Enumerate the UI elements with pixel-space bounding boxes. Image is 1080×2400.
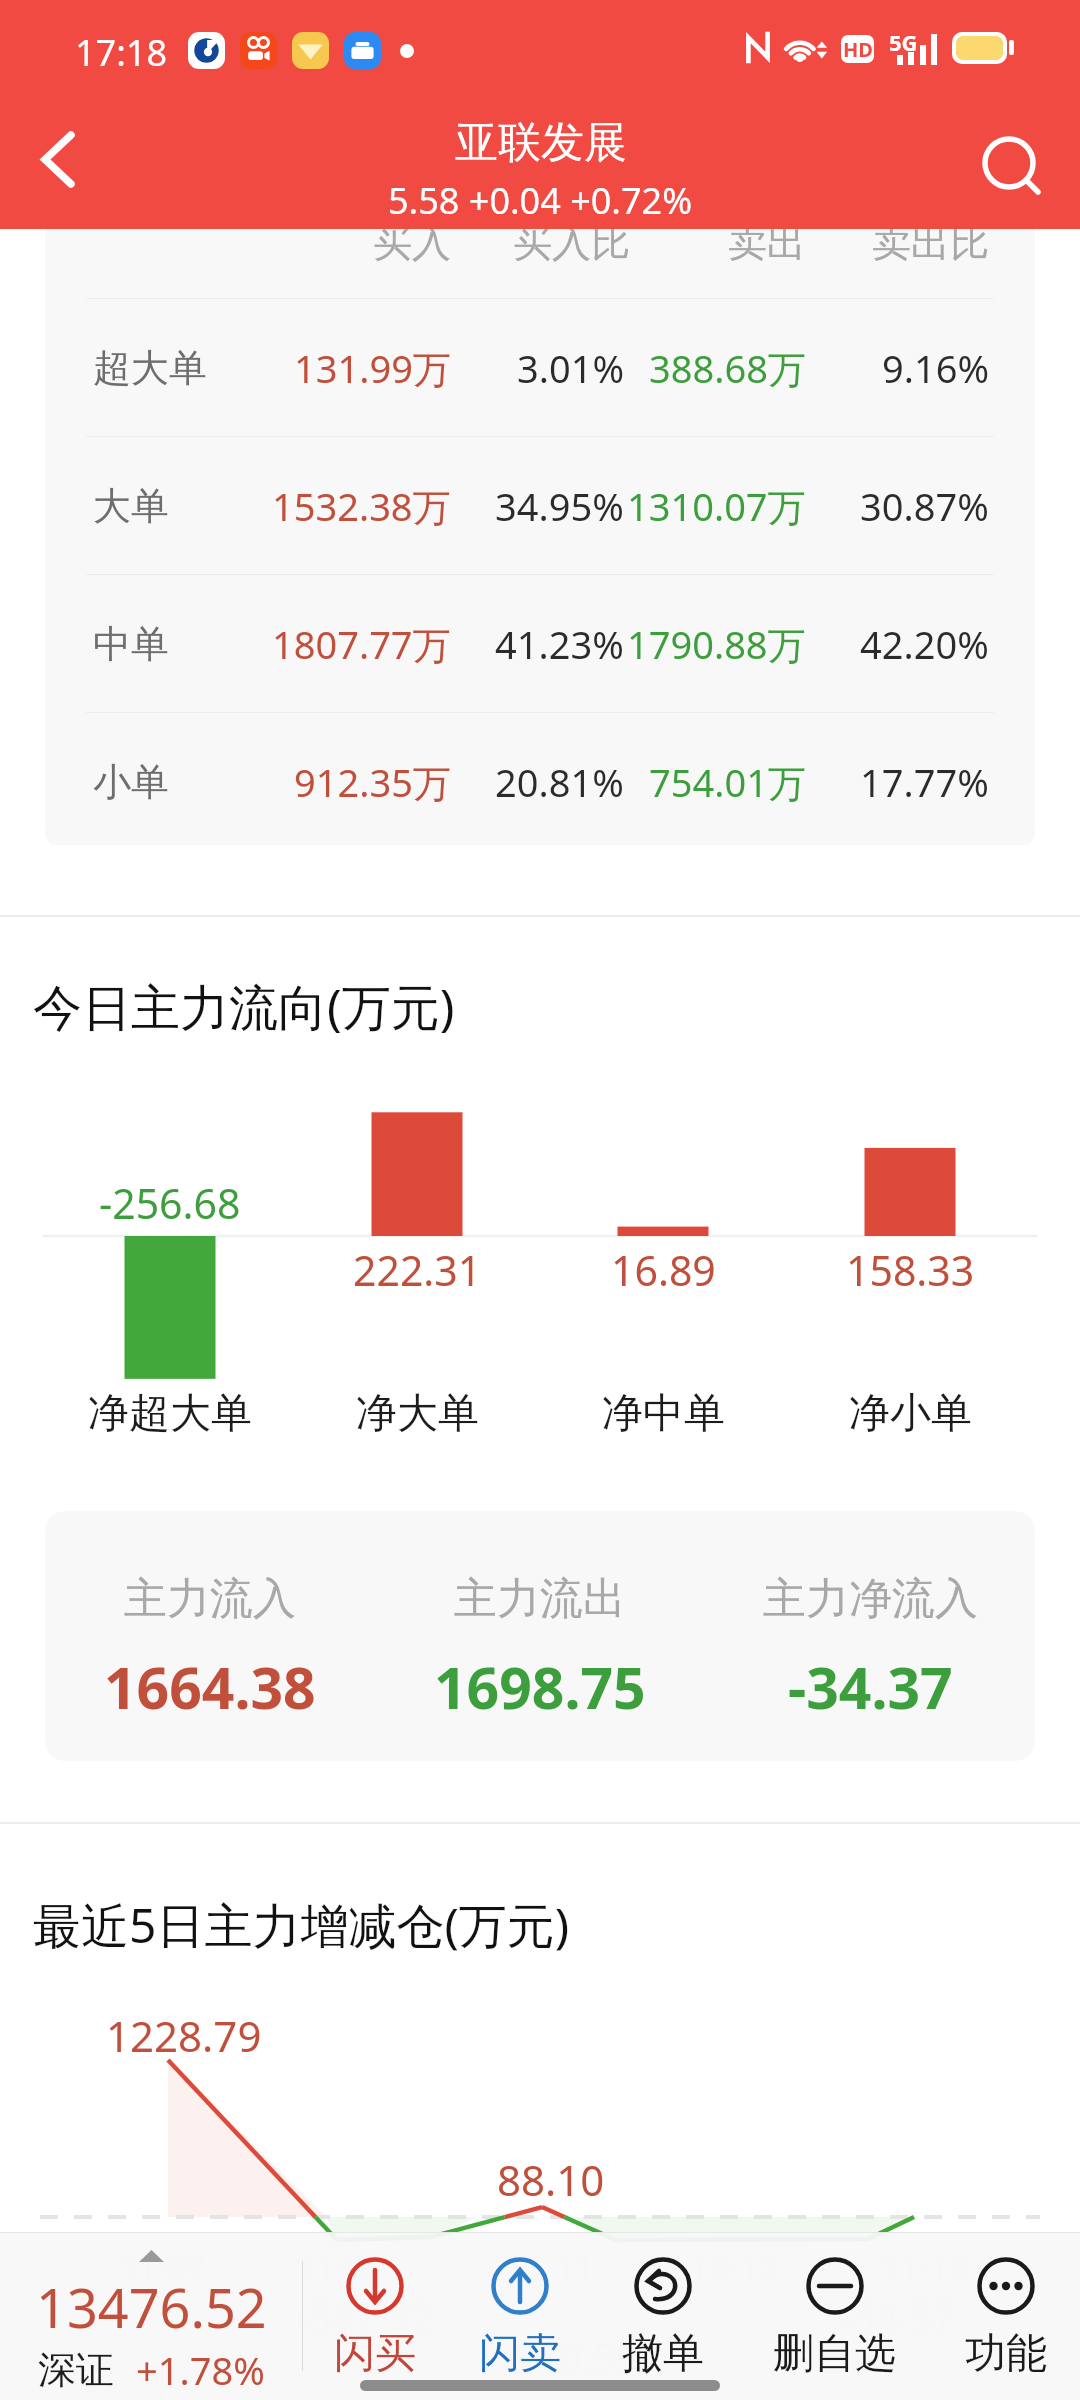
staticText: 亚联发展 xyxy=(455,116,627,170)
button[interactable]: Back xyxy=(0,99,122,229)
staticText: 撤单 xyxy=(622,2328,704,2380)
staticText: 1310.07万 xyxy=(627,480,806,532)
staticText: 388.68万 xyxy=(649,342,806,394)
staticText: 小单 xyxy=(93,758,169,806)
staticText: 主力流出 xyxy=(454,1572,626,1626)
staticText: 912.35万 xyxy=(294,756,451,808)
staticText: -540.55 xyxy=(500,2330,638,2384)
staticText: 17:18 xyxy=(75,28,168,77)
staticText: 11-12 xyxy=(690,2245,779,2291)
staticText: 今日主力流向(万元) xyxy=(33,973,455,1040)
staticText: 最近5日主力增减仓(万元) xyxy=(33,1892,570,1958)
staticText: 158.33 xyxy=(846,1242,975,1298)
staticText: 11-11 xyxy=(506,2245,595,2291)
button[interactable]: 删自选 xyxy=(748,2232,920,2400)
staticText: 主力流入 xyxy=(124,1572,296,1626)
staticText: 净小单 xyxy=(849,1388,972,1440)
staticText: 5.58 +0.04 +0.72% xyxy=(388,176,693,225)
staticText: 42.20% xyxy=(860,618,989,670)
staticText: 主力净流入 xyxy=(763,1572,978,1626)
staticText: 中单 xyxy=(93,620,169,668)
staticText: 131.99万 xyxy=(294,342,451,394)
staticText: 11-07 xyxy=(118,2245,207,2291)
staticText: 30.87% xyxy=(860,480,989,532)
staticText: 卖出 xyxy=(728,229,806,267)
staticText: 3.01% xyxy=(517,342,624,394)
staticText: 净超大单 xyxy=(88,1388,252,1440)
staticText: 1664.38 xyxy=(104,1648,316,1726)
staticText: 11-08 xyxy=(296,2245,385,2291)
staticText: 17.77% xyxy=(860,756,989,808)
staticText: +1.78% xyxy=(136,2344,265,2396)
staticText: 1790.88万 xyxy=(627,618,806,670)
staticText: 超大单 xyxy=(93,344,207,392)
staticText: 深证 xyxy=(38,2346,114,2394)
staticText: 1698.75 xyxy=(434,1648,646,1726)
staticText: HD xyxy=(843,36,873,63)
staticText: 222.31 xyxy=(353,1242,482,1298)
staticText: 闪卖 xyxy=(479,2328,561,2380)
staticText: 1228.79 xyxy=(106,2007,262,2064)
staticText: 5G xyxy=(889,27,918,57)
staticText: 买入 xyxy=(373,229,451,267)
staticText: 删自选 xyxy=(773,2328,896,2380)
staticText: -317.92 xyxy=(296,2288,434,2342)
staticText: 闪买 xyxy=(334,2328,416,2380)
staticText: 88.10 xyxy=(497,2151,605,2208)
staticText: 卖出比 xyxy=(872,229,989,267)
button[interactable]: 13476.52 xyxy=(0,2232,302,2400)
button[interactable]: 撤单 xyxy=(577,2232,749,2400)
staticText: -34.37 xyxy=(840,2288,956,2342)
staticText: 34.95% xyxy=(495,480,624,532)
staticText: 16.89 xyxy=(611,1242,716,1298)
staticText: 754.01万 xyxy=(649,756,806,808)
staticText: 净中单 xyxy=(602,1388,725,1440)
button[interactable]: 闪卖 xyxy=(434,2232,606,2400)
staticText: -256.68 xyxy=(99,1175,241,1231)
staticText: 净大单 xyxy=(356,1388,479,1440)
staticText: 买入比 xyxy=(513,229,630,267)
staticText: 9.16% xyxy=(882,342,989,394)
staticText: -34.37 xyxy=(788,1648,953,1726)
staticText: 13476.52 xyxy=(36,2270,267,2344)
staticText: 1807.77万 xyxy=(272,618,451,670)
staticText: 功能 xyxy=(965,2328,1047,2380)
staticText: 大单 xyxy=(93,482,169,530)
button[interactable]: 功能 xyxy=(920,2232,1080,2400)
staticText: 41.23% xyxy=(495,618,624,670)
staticText: 20.81% xyxy=(495,756,624,808)
staticText: 1532.38万 xyxy=(272,480,451,532)
button[interactable]: 闪买 xyxy=(289,2232,461,2400)
button[interactable]: Search xyxy=(958,99,1080,229)
